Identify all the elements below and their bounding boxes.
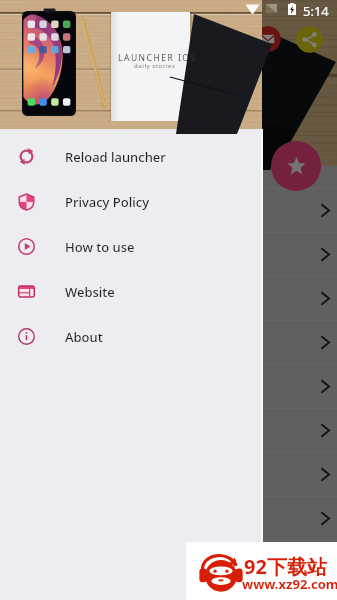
- staticText: About: [65, 328, 103, 346]
- staticText: Reload launcher: [65, 148, 166, 166]
- staticText: 5:14: [303, 2, 329, 20]
- button[interactable]: [0, 320, 337, 364]
- staticText: Website: [65, 283, 115, 301]
- staticText: How to use: [65, 238, 135, 256]
- button[interactable]: Gmail: [255, 26, 281, 52]
- button[interactable]: [0, 364, 337, 408]
- button[interactable]: [0, 232, 337, 276]
- button[interactable]: [0, 496, 337, 540]
- button[interactable]: Privacy Policy: [0, 179, 262, 224]
- button[interactable]: [0, 540, 337, 584]
- button[interactable]: [0, 276, 337, 320]
- button[interactable]: How to use: [0, 224, 262, 269]
- staticText: 92下载站: [244, 553, 327, 580]
- staticText: daily stories: [134, 62, 176, 70]
- button[interactable]: [0, 584, 337, 600]
- button[interactable]: Share: [296, 26, 323, 53]
- button[interactable]: Website: [0, 269, 262, 314]
- button[interactable]: About: [0, 314, 262, 359]
- button[interactable]: Reload launcher: [0, 134, 262, 179]
- button[interactable]: [0, 408, 337, 452]
- staticText: www.xz92.com: [242, 575, 337, 593]
- button[interactable]: [0, 452, 337, 496]
- button[interactable]: [0, 188, 337, 232]
- staticText: Privacy Policy: [65, 193, 149, 211]
- staticText: LAUNCHER IOS: [118, 52, 197, 64]
- button[interactable]: Favourites: [271, 141, 321, 191]
